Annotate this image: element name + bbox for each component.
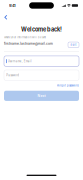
staticText: Next: [37, 94, 45, 98]
staticText: firstname.lastname@mail.com: [4, 42, 53, 46]
staticText: Welcome back!: [21, 26, 62, 33]
staticText: 9:41: [9, 3, 16, 8]
staticText: Password: [6, 73, 19, 77]
button[interactable]: Next: [4, 91, 79, 101]
button[interactable]: Back: [0, 11, 11, 23]
staticText: Where your information will be sent: [4, 36, 46, 39]
staticText: Forgot password: [57, 84, 79, 87]
button[interactable]: Edit: [68, 40, 79, 48]
button[interactable]: Forgot password: [4, 80, 79, 87]
staticText: Edit: [70, 43, 76, 46]
staticText: Username, Email: [8, 59, 32, 63]
